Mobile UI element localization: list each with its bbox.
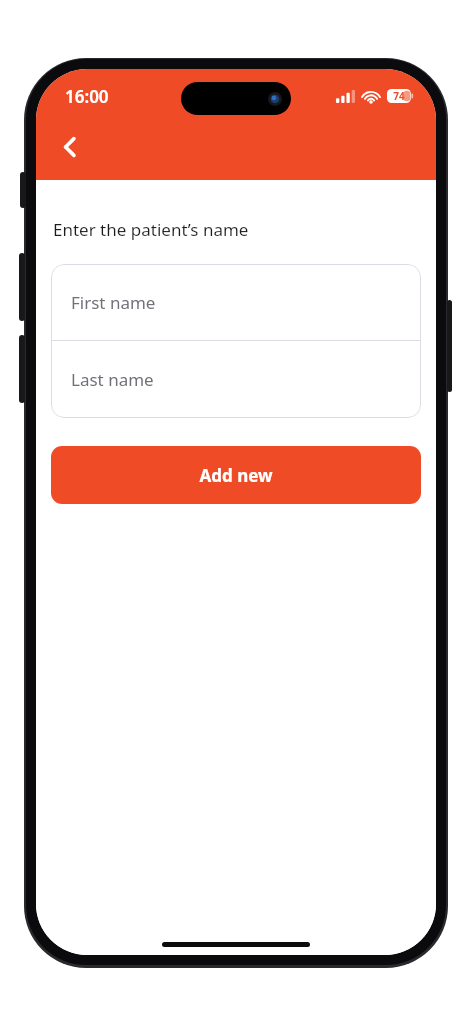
staticText: First name — [71, 291, 156, 314]
button[interactable]: First name — [51, 264, 421, 340]
button[interactable]: Add new — [51, 446, 421, 504]
button[interactable]: Last name — [51, 341, 421, 418]
staticText: 16:00 — [65, 85, 109, 108]
staticText: 74 — [393, 89, 405, 103]
staticText: Last name — [71, 368, 154, 391]
staticText: Enter the patient’s name — [53, 218, 249, 241]
staticText: Add new — [199, 464, 273, 487]
button[interactable]: Back — [46, 123, 94, 171]
